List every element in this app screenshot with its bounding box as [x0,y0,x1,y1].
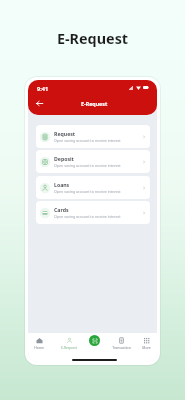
staticText: Loans [54,181,70,188]
staticText: More [142,345,151,350]
staticText: Home [34,345,44,350]
button[interactable]: Deposit [36,150,150,173]
staticText: 9:41 [37,85,49,93]
button[interactable]: Home [28,337,51,353]
button[interactable]: Back [32,97,46,109]
staticText: E-Request [61,345,77,350]
staticText: Transaction [112,345,131,350]
staticText: E-Request [0,29,185,49]
button[interactable]: Transaction [109,337,133,353]
button[interactable]: Cards [36,201,150,224]
staticText: Open saving account to receive interest [54,163,121,168]
staticText: Deposit [54,155,74,162]
button[interactable]: E-Request [57,337,81,353]
button[interactable]: Scan [89,335,100,346]
button[interactable]: More [134,337,157,353]
staticText: Request [54,130,76,137]
staticText: Open saving account to receive interest [54,214,121,219]
staticText: E-Request [81,100,108,107]
staticText: Open saving account to receive interest [54,138,121,143]
staticText: Open saving account to receive interest [54,189,121,194]
button[interactable]: Request [36,125,150,148]
staticText: Cards [54,206,69,213]
button[interactable]: Loans [36,176,150,199]
